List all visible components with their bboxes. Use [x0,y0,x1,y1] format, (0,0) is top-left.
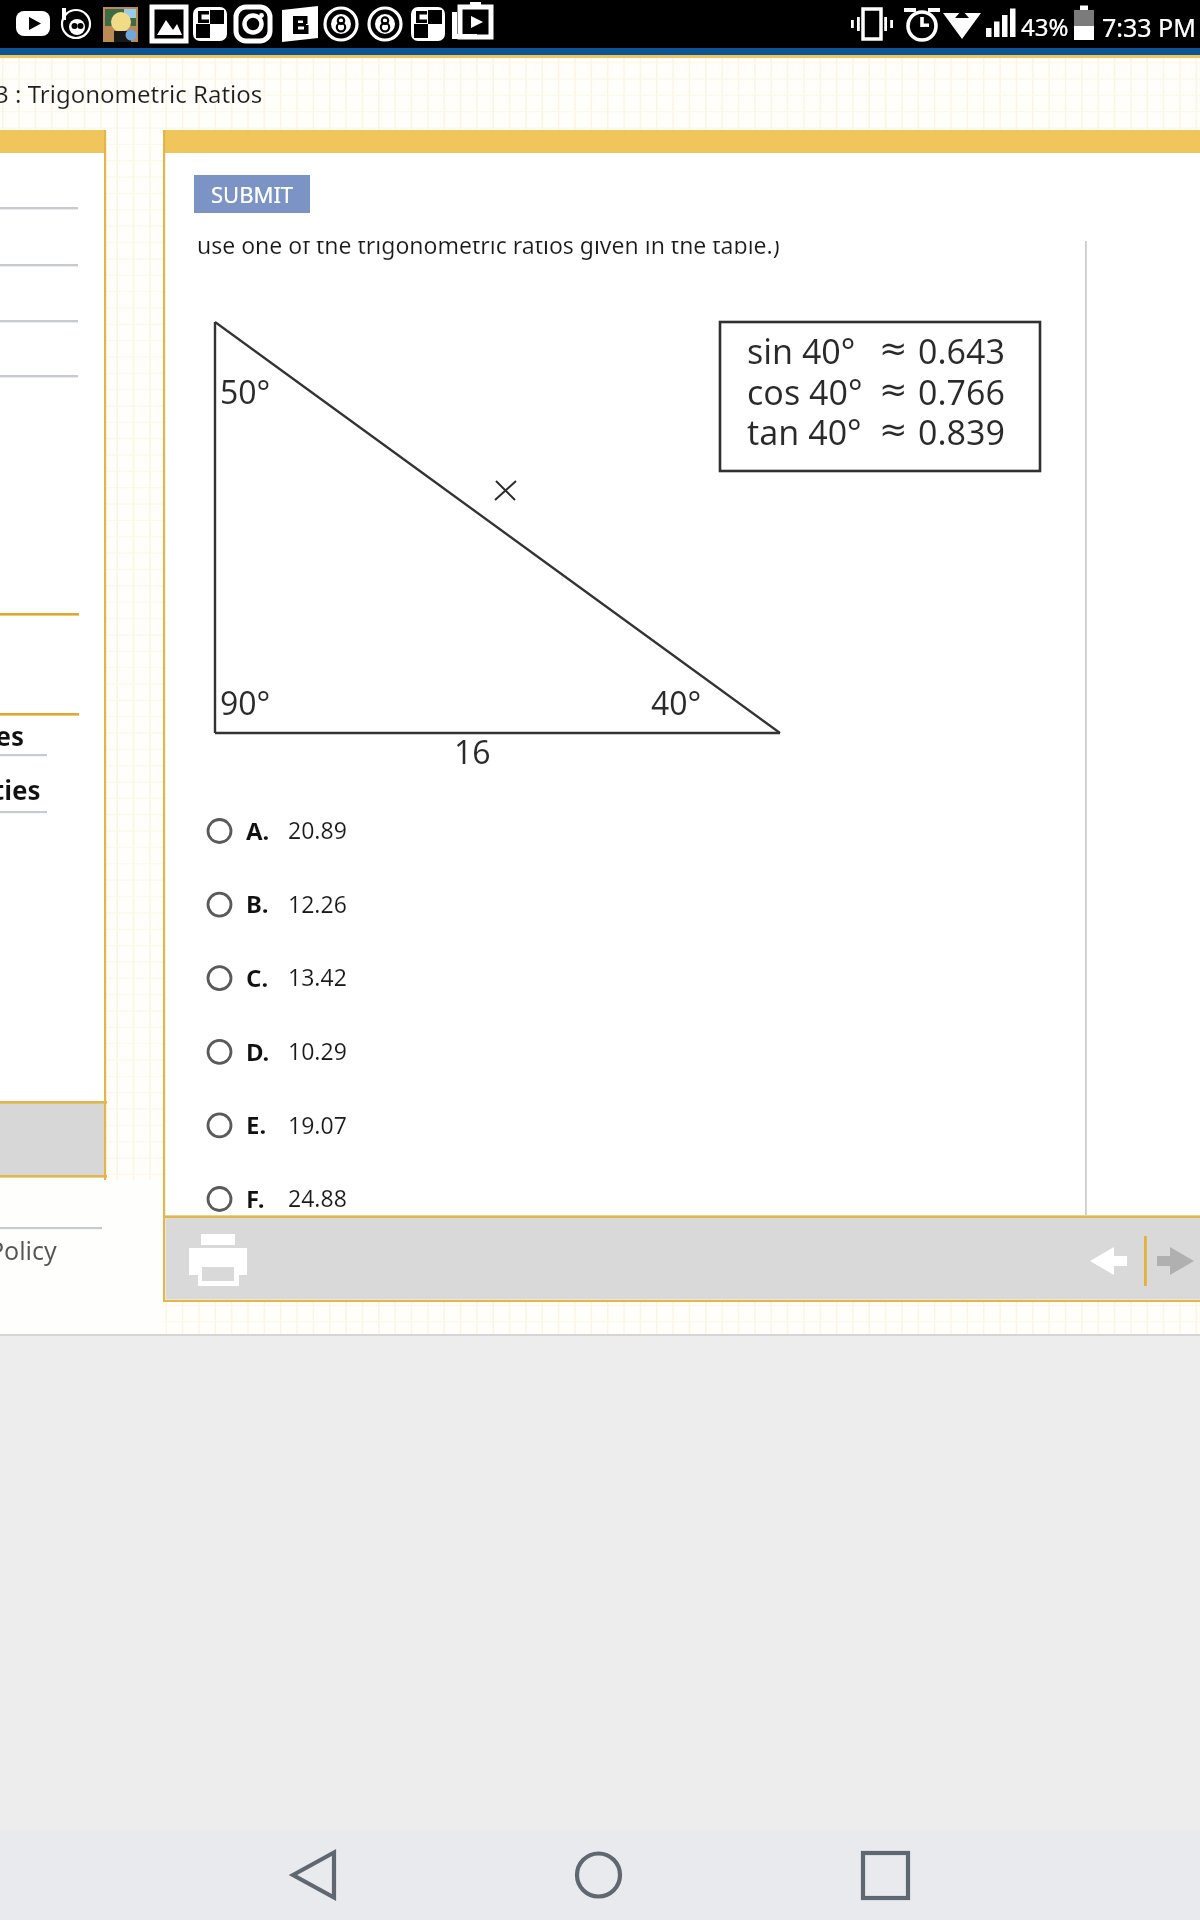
button[interactable]: Home [558,1835,638,1915]
staticText: 16 [454,730,491,774]
staticText: 50° [220,370,271,414]
button[interactable] [208,1028,358,1074]
staticText: tan 40° [747,409,862,455]
button[interactable] [208,1102,358,1148]
staticText: ≈ [879,328,908,368]
staticText: 0.766 [918,369,1005,415]
staticText: E. [246,1108,267,1141]
staticText: Capabilities [0,772,41,807]
button[interactable]: Recent apps [846,1835,926,1915]
staticText: A. [246,814,270,847]
button[interactable]: SUBMIT [194,175,310,213]
staticText: D. [246,1035,270,1068]
staticText: 24.88 [288,1182,347,1213]
staticText: 40° [651,681,702,725]
staticText: 3 : Trigonometric Ratios [0,77,263,110]
button[interactable] [208,955,358,1001]
staticText: Privacy Policy [0,1233,57,1267]
staticText: use one of the trigonometric ratios give… [197,229,780,260]
button[interactable] [208,881,358,927]
staticText: 12.26 [288,888,347,919]
staticText: SUBMIT [211,179,294,209]
staticText: C. [246,961,269,994]
staticText: 13.42 [288,961,347,992]
staticText: 20.89 [288,814,347,845]
staticText: cos 40° [747,369,863,415]
button[interactable]: Back [273,1835,353,1915]
staticText: 90° [220,681,271,725]
staticText: 7:33 PM [1102,10,1196,44]
staticText: B. [246,887,269,920]
staticText: ≈ [879,369,908,409]
staticText: sin 40° [747,328,856,374]
staticText: 19.07 [288,1109,347,1140]
staticText: 43% [1021,10,1069,43]
staticText: F. [246,1182,265,1215]
staticText: 0.839 [918,409,1005,455]
button[interactable] [208,808,358,854]
staticText: Courses [0,718,25,753]
staticText: ≈ [879,409,908,449]
staticText: 0.643 [918,328,1005,374]
button[interactable] [208,1176,358,1222]
staticText: 10.29 [288,1035,347,1066]
